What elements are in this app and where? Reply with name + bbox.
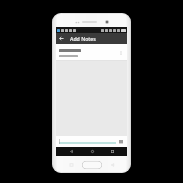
button[interactable]: Navigate up xyxy=(56,33,67,44)
button[interactable]: More options xyxy=(117,49,125,57)
button[interactable]: Home xyxy=(82,161,102,169)
button[interactable]: More options xyxy=(56,44,127,61)
button[interactable]: Recent apps xyxy=(106,147,118,156)
button[interactable]: Back xyxy=(65,147,77,156)
staticText: Add Notes xyxy=(70,35,96,42)
button[interactable]: Send xyxy=(118,139,124,145)
button[interactable] xyxy=(59,136,116,147)
button[interactable]: Home xyxy=(86,147,98,156)
